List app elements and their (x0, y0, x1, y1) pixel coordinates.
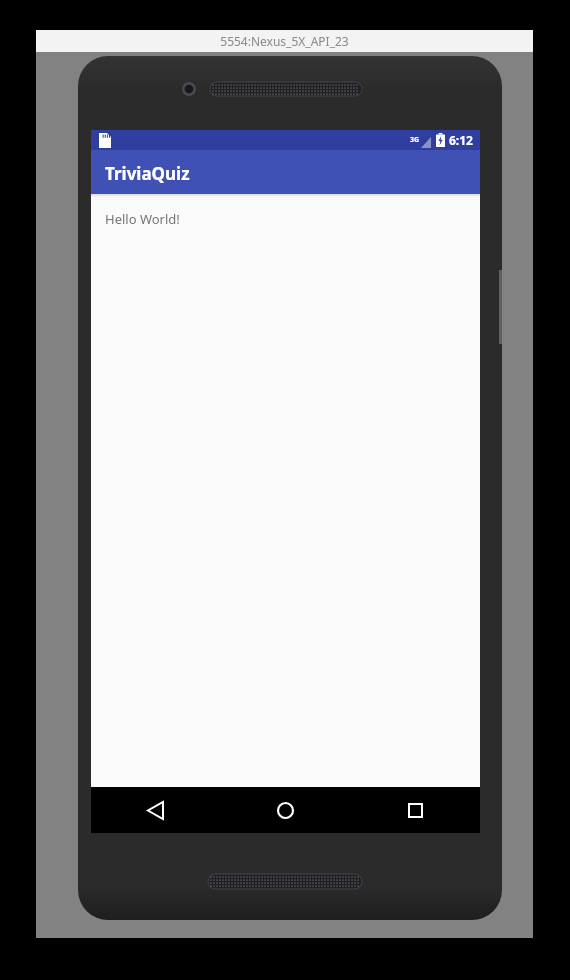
staticText: Hello World! (105, 210, 180, 228)
staticText: 5554:Nexus_5X_API_23 (220, 33, 349, 49)
staticText: 3G (410, 135, 420, 145)
staticText: TriviaQuiz (105, 162, 190, 185)
button[interactable]: Home (220, 787, 350, 833)
button[interactable]: Back (91, 787, 220, 833)
button[interactable]: TriviaQuiz (91, 150, 480, 194)
button[interactable]: Recent apps (350, 787, 480, 833)
staticText: 6:12 (449, 132, 473, 148)
